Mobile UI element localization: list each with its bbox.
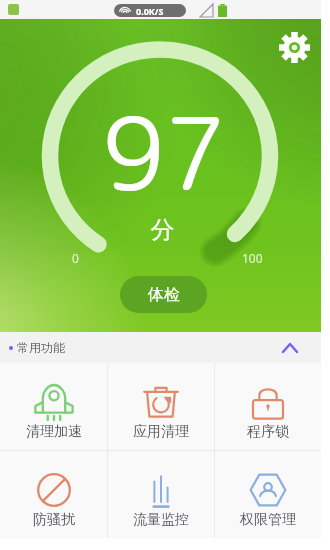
button[interactable]: 体检 [120, 276, 207, 313]
button[interactable]: 应用清理 [108, 363, 214, 450]
staticText: 分 [2, 215, 323, 245]
staticText: 清理加速 [26, 423, 82, 441]
button[interactable]: 流量监控 [108, 451, 214, 538]
button[interactable]: Settings [279, 32, 310, 63]
staticText: 体检 [148, 285, 180, 305]
button[interactable]: 清理加速 [0, 363, 107, 450]
staticText: 100 [242, 250, 263, 266]
staticText: 应用清理 [133, 423, 189, 441]
staticText: 0.0K/S [136, 5, 164, 17]
button[interactable]: 程序锁 [215, 363, 321, 450]
staticText: 常用功能 [17, 340, 65, 355]
staticText: 流量监控 [133, 511, 189, 529]
staticText: 防骚扰 [33, 511, 75, 529]
staticText: 程序锁 [247, 423, 289, 441]
staticText: 0 [72, 250, 79, 266]
staticText: 权限管理 [240, 511, 296, 529]
staticText: 97 [4, 84, 325, 222]
button[interactable]: Collapse [279, 337, 301, 359]
button[interactable]: 权限管理 [215, 451, 321, 538]
button[interactable]: 防骚扰 [0, 451, 107, 538]
